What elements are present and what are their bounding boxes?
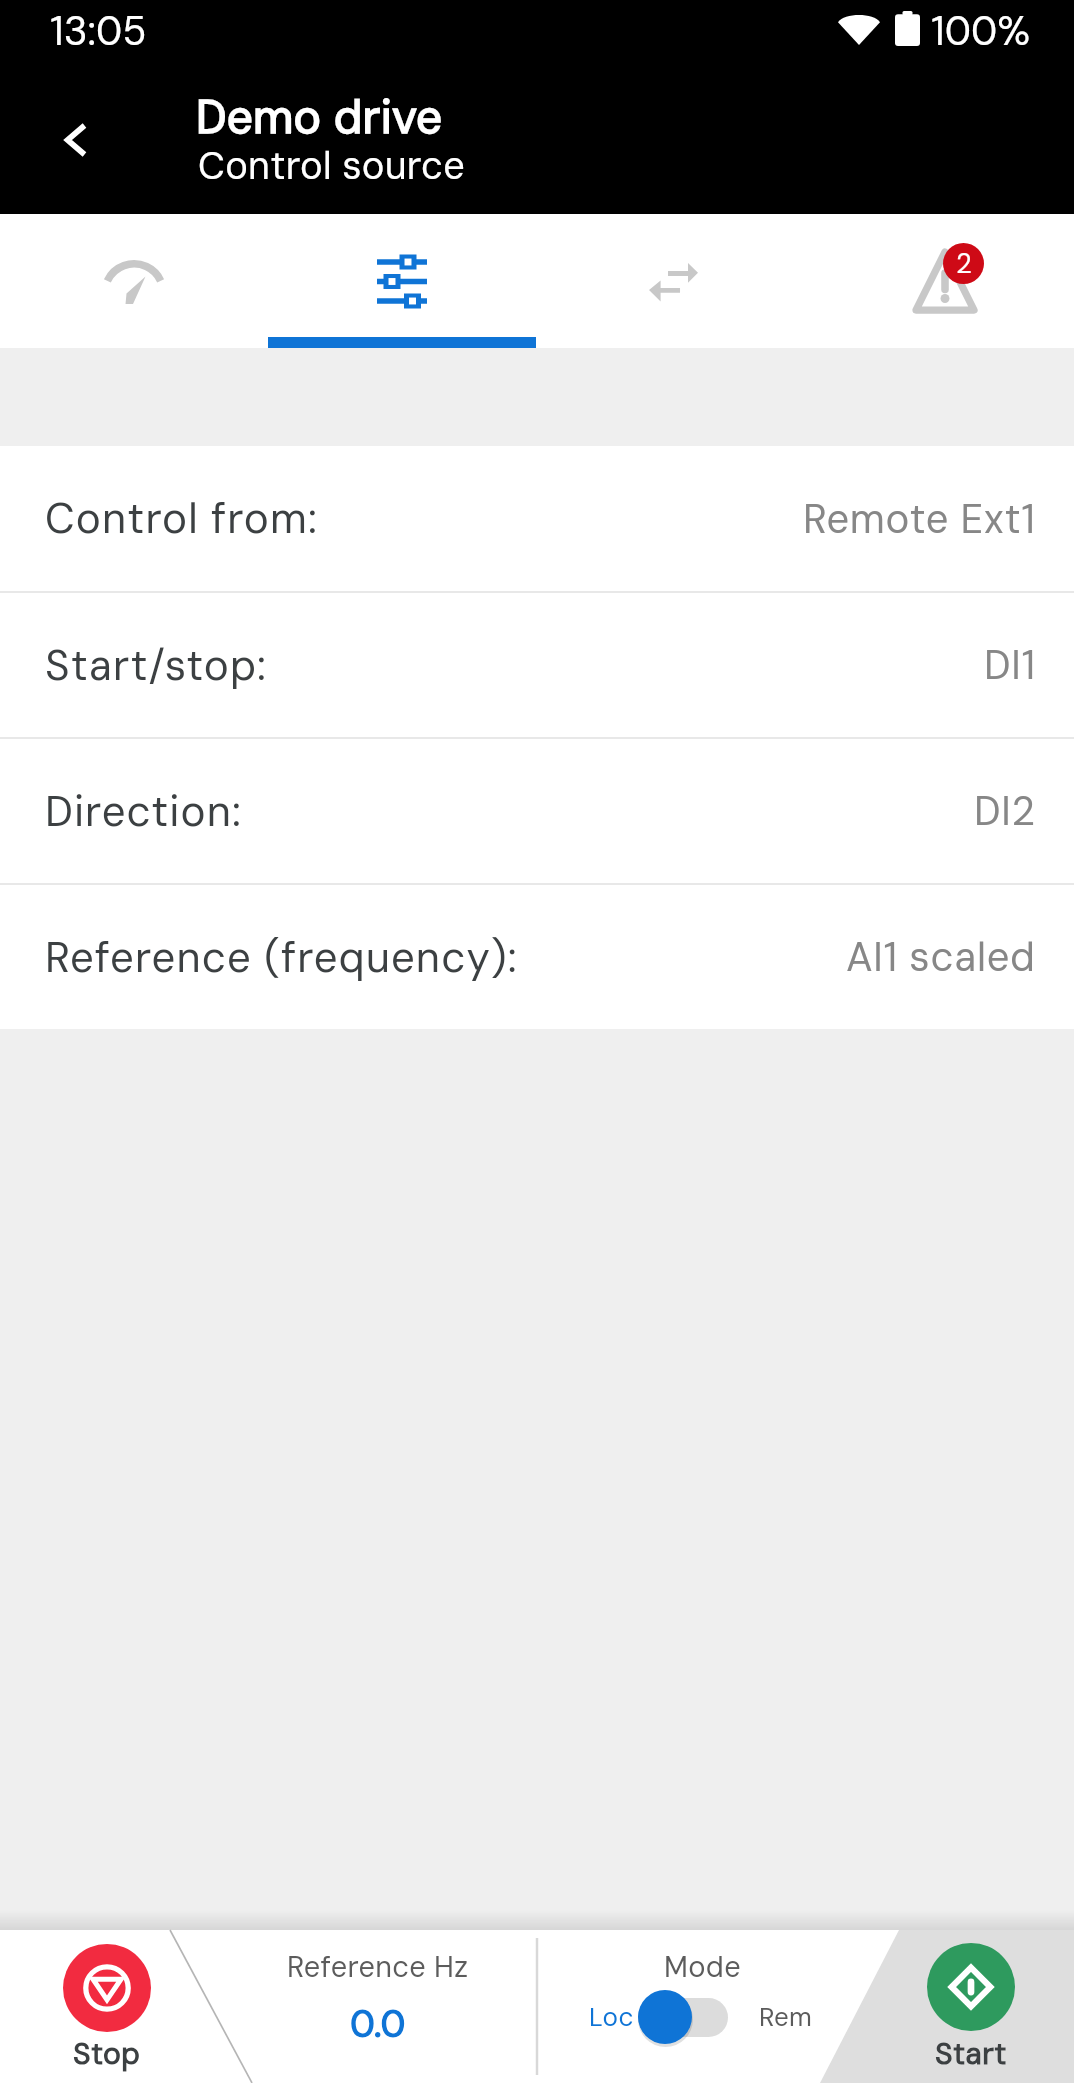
staticText: 13:05	[50, 5, 147, 57]
button[interactable]: Stop	[23, 1930, 191, 2083]
staticText: Stop	[73, 2034, 141, 2073]
staticText: Control source	[198, 141, 465, 190]
staticText: Reference (frequency):	[45, 930, 518, 985]
staticText: 0.0	[350, 1999, 406, 2048]
button[interactable]: Direction:	[0, 739, 1074, 883]
staticText: Loc	[589, 2000, 634, 2034]
button[interactable]: Faults	[805, 214, 1074, 348]
staticText: Reference Hz	[287, 1948, 469, 1986]
staticText: 100%	[931, 5, 1031, 57]
staticText: DI1	[984, 639, 1036, 691]
staticText: Start	[935, 2034, 1007, 2073]
staticText: Remote Ext1	[803, 493, 1036, 545]
button[interactable]: Control from:	[0, 446, 1074, 591]
staticText: DI2	[974, 785, 1036, 837]
staticText: Rem	[759, 2000, 813, 2034]
staticText: Mode	[664, 1948, 741, 1986]
button[interactable]: Back	[28, 92, 124, 188]
button[interactable]: Status	[0, 214, 268, 348]
staticText: Start/stop:	[45, 638, 267, 693]
button[interactable]: Direction	[536, 214, 805, 348]
staticText: Direction:	[45, 784, 242, 839]
button[interactable]: Settings	[268, 214, 536, 348]
staticText: AI1 scaled	[846, 931, 1036, 983]
button[interactable]: Local or remote mode toggle	[638, 1988, 728, 2046]
staticText: Demo drive	[196, 87, 443, 147]
staticText: 2	[956, 246, 972, 281]
staticText: Control from:	[45, 491, 318, 546]
button[interactable]: Start/stop:	[0, 593, 1074, 737]
button[interactable]: Reference (frequency):	[0, 885, 1074, 1029]
button[interactable]: Start	[887, 1930, 1055, 2083]
